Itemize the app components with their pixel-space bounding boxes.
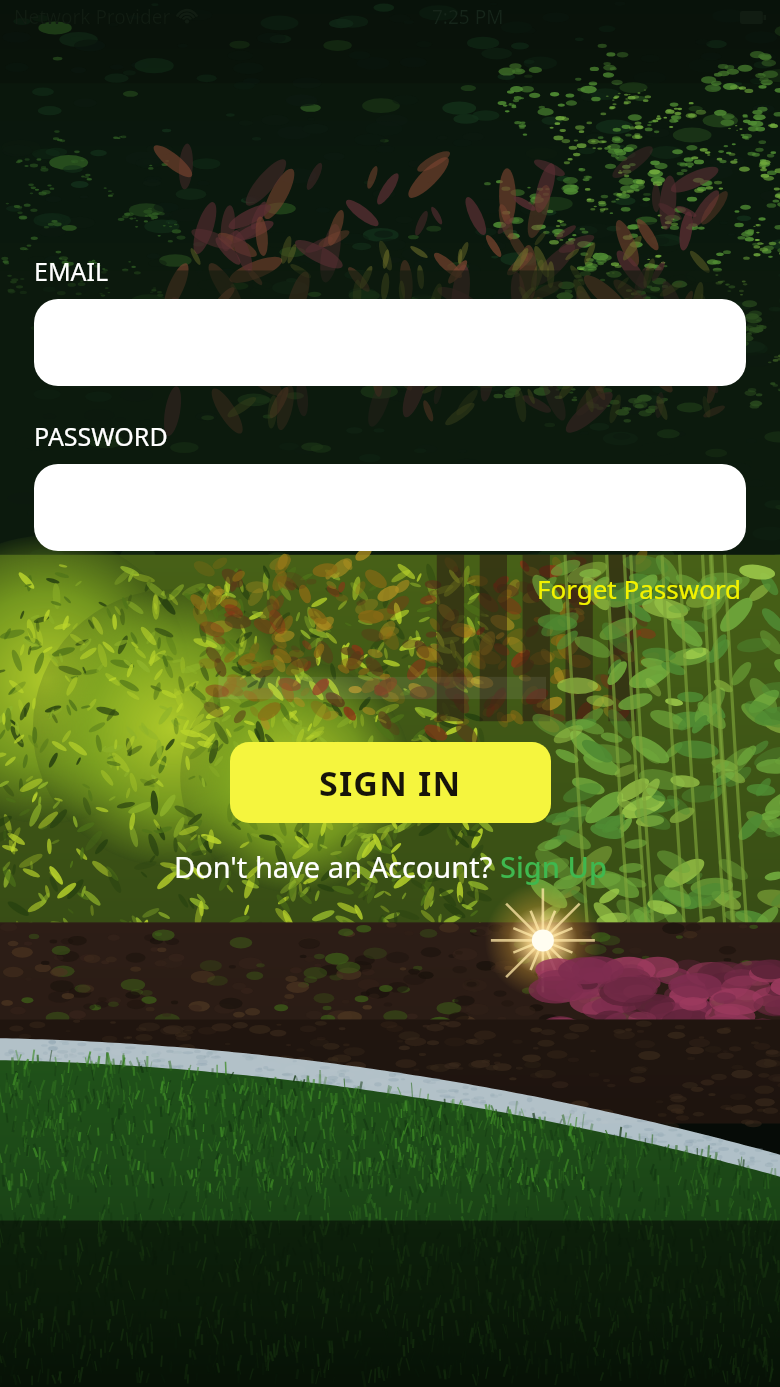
- staticText: 7:25 PM: [432, 4, 504, 30]
- button[interactable]: [34, 464, 746, 551]
- staticText: Forget Password: [537, 571, 742, 606]
- staticText: EMAIL: [34, 254, 109, 288]
- button[interactable]: [34, 299, 746, 386]
- staticText: SIGN IN: [319, 760, 462, 806]
- staticText: Sign Up: [500, 847, 607, 886]
- button[interactable]: Forget Password: [533, 567, 746, 610]
- button[interactable]: SIGN IN: [230, 742, 551, 823]
- staticText: PASSWORD: [34, 419, 168, 453]
- staticText: Don't have an Account?: [174, 847, 500, 886]
- button[interactable]: Sign Up: [500, 847, 607, 886]
- staticText: Network Provider: [14, 4, 171, 30]
